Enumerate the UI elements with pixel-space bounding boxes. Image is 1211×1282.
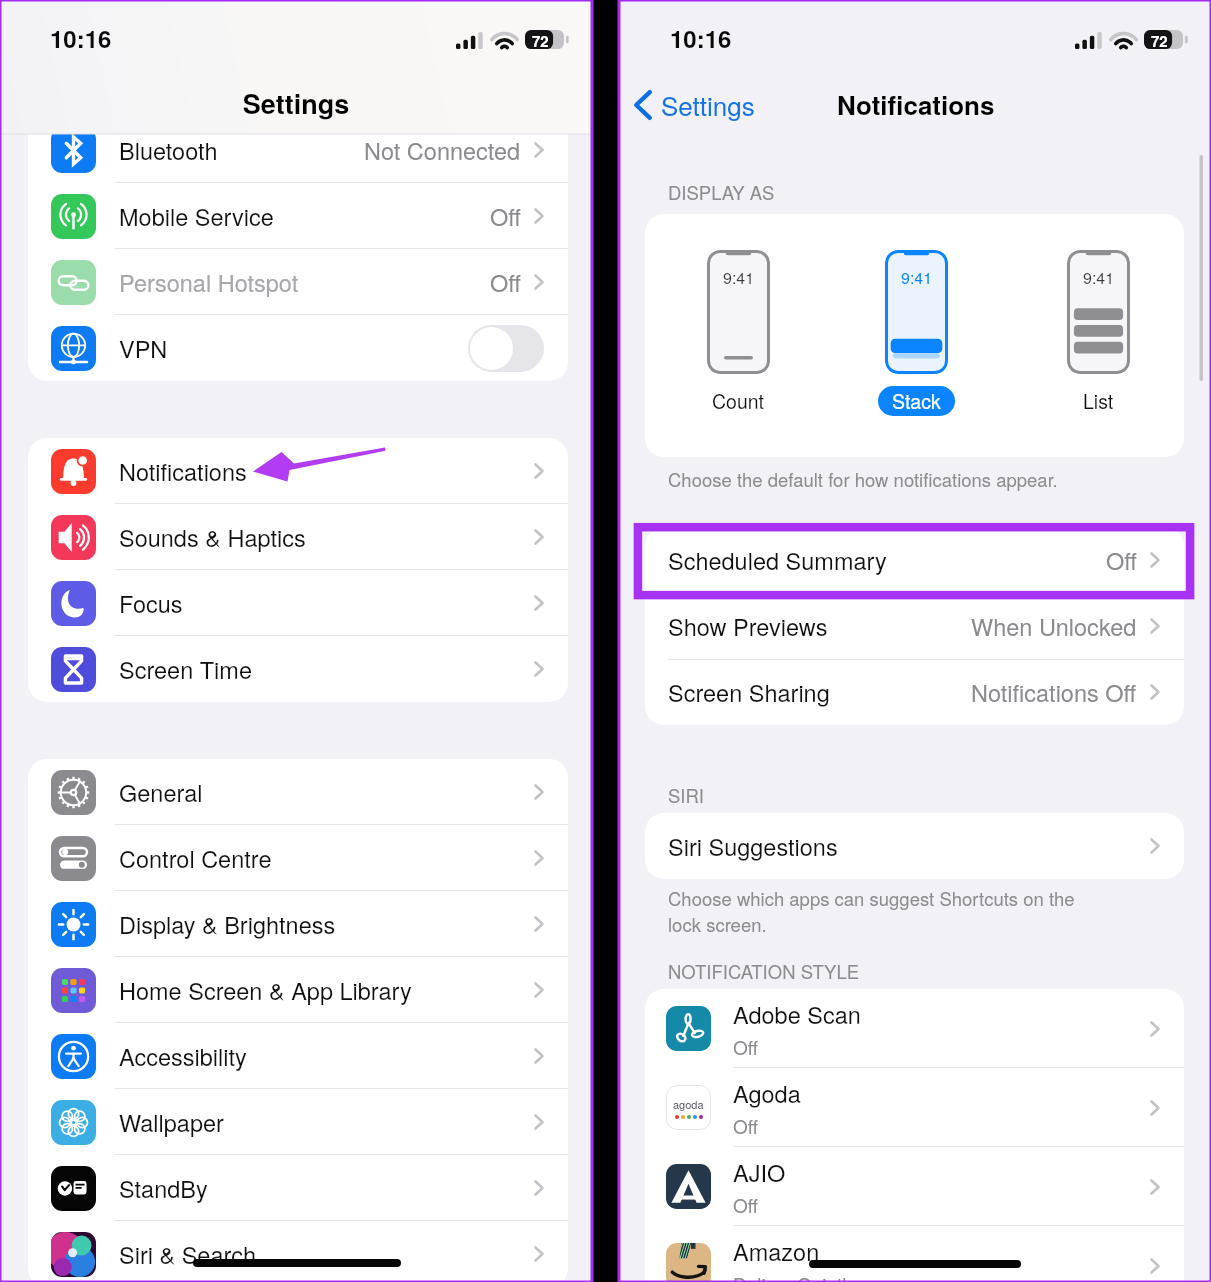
staticText: StandBy xyxy=(119,1171,534,1205)
staticText: Count xyxy=(712,387,765,415)
button[interactable]: Wallpaper xyxy=(28,1089,568,1155)
staticText: Wallpaper xyxy=(119,1105,534,1139)
button[interactable]: Control Centre xyxy=(28,825,568,891)
button[interactable]: Notifications xyxy=(28,438,568,504)
button[interactable]: Accessibility xyxy=(28,1023,568,1089)
staticText: Choose the default for how notifications… xyxy=(668,466,1058,492)
staticText: NOTIFICATION STYLE xyxy=(668,958,860,984)
button[interactable]: StandBy xyxy=(28,1155,568,1221)
staticText: List xyxy=(1083,387,1114,415)
staticText: Show Previews xyxy=(668,609,971,643)
staticText: When Unlocked xyxy=(971,609,1137,643)
staticText: 72 xyxy=(532,30,549,49)
staticText: Siri & Search xyxy=(119,1237,534,1271)
staticText: Notifications xyxy=(837,86,995,123)
button[interactable]: Mobile Service xyxy=(28,183,568,249)
staticText: Agoda xyxy=(733,1076,801,1110)
button[interactable]: Stack xyxy=(878,386,955,416)
button[interactable]: Sounds & Haptics xyxy=(28,504,568,570)
button[interactable]: Home Screen & App Library xyxy=(28,957,568,1023)
staticText: DISPLAY AS xyxy=(668,179,775,205)
staticText: Bluetooth xyxy=(119,133,364,167)
button[interactable]: List xyxy=(1069,386,1128,416)
staticText: 72 xyxy=(1151,30,1168,49)
button[interactable]: Display & Brightness xyxy=(28,891,568,957)
button[interactable]: Count xyxy=(698,386,779,416)
staticText: Home Screen & App Library xyxy=(119,973,534,1007)
staticText: Focus xyxy=(119,586,534,620)
staticText: Off xyxy=(490,265,521,299)
staticText: Off xyxy=(733,1033,758,1060)
button[interactable]: VPN toggle xyxy=(468,325,544,372)
button[interactable]: Siri Suggestions xyxy=(645,813,1184,879)
staticText: agoda xyxy=(673,1096,704,1112)
staticText: SIRI xyxy=(668,782,704,808)
staticText: Deliver Quietly xyxy=(733,1270,856,1282)
staticText: Accessibility xyxy=(119,1039,534,1073)
button[interactable]: Amazon xyxy=(645,1226,1184,1282)
button[interactable]: agoda xyxy=(645,1068,1184,1147)
staticText: Not Connected xyxy=(364,133,521,167)
button[interactable]: Screen Sharing xyxy=(645,659,1184,725)
staticText: 9:41 xyxy=(723,266,755,289)
staticText: Amazon xyxy=(733,1234,820,1268)
button[interactable]: Bluetooth xyxy=(28,117,568,183)
staticText: Off xyxy=(733,1112,758,1139)
button[interactable]: General xyxy=(28,759,568,825)
staticText: Control Centre xyxy=(119,841,534,875)
staticText: Screen Sharing xyxy=(668,675,971,709)
button[interactable]: Siri & Search xyxy=(28,1221,568,1282)
staticText: Settings xyxy=(0,84,592,123)
staticText: 10:16 xyxy=(670,21,732,55)
staticText: Adobe Scan xyxy=(733,997,861,1031)
staticText: Off xyxy=(490,199,521,233)
staticText: 10:16 xyxy=(50,21,112,55)
button[interactable]: Show Previews xyxy=(645,593,1184,659)
staticText: General xyxy=(119,775,534,809)
button[interactable]: Adobe Scan xyxy=(645,989,1184,1068)
staticText: Screen Time xyxy=(119,652,534,686)
staticText: Siri Suggestions xyxy=(668,829,1150,863)
staticText: 9:41 xyxy=(901,266,933,289)
button[interactable]: Settings xyxy=(620,86,763,123)
staticText: VPN xyxy=(119,331,468,365)
staticText: Personal Hotspot xyxy=(119,265,490,299)
button[interactable]: AJIO xyxy=(645,1147,1184,1226)
button[interactable]: Personal Hotspot xyxy=(28,249,568,315)
staticText: Sounds & Haptics xyxy=(119,520,534,554)
staticText: Notifications xyxy=(119,454,534,488)
staticText: Settings xyxy=(661,86,755,123)
button[interactable]: VPN xyxy=(28,315,568,381)
staticText: Off xyxy=(733,1191,758,1218)
staticText: Notifications Off xyxy=(971,675,1137,709)
staticText: Scheduled Summary xyxy=(668,543,1106,577)
staticText: Off xyxy=(1106,543,1137,577)
staticText: Display & Brightness xyxy=(119,907,534,941)
button[interactable]: Scheduled Summary xyxy=(645,527,1184,593)
staticText: 9:41 xyxy=(1083,266,1115,289)
button[interactable]: Focus xyxy=(28,570,568,636)
button[interactable]: Screen Time xyxy=(28,636,568,702)
staticText: Choose which apps can suggest Shortcuts … xyxy=(668,885,1075,937)
staticText: Stack xyxy=(892,387,941,415)
staticText: AJIO xyxy=(733,1155,786,1189)
staticText: Mobile Service xyxy=(119,199,490,233)
